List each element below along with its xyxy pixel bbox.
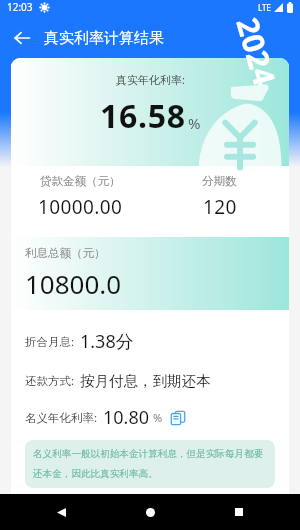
staticText: % — [188, 113, 201, 133]
staticText: 12:03 — [7, 0, 33, 14]
staticText: 分期数 — [202, 174, 237, 188]
staticText: 按月付息，到期还本 — [80, 372, 211, 390]
staticText: 120 — [203, 194, 237, 220]
button[interactable]: Back — [6, 22, 38, 54]
button[interactable]: Recents — [226, 499, 252, 525]
staticText: 贷款金额（元） — [40, 174, 121, 188]
staticText: 16.58 — [100, 94, 186, 138]
staticText: LTE — [258, 2, 271, 13]
staticText: 10000.00 — [38, 194, 123, 220]
staticText: 还款方式: — [25, 373, 75, 389]
button[interactable]: Back — [48, 499, 74, 525]
staticText: 真实年化利率: — [116, 72, 185, 87]
staticText: 10800.0 — [25, 266, 122, 301]
staticText: 10.80 — [103, 405, 150, 430]
staticText: 名义利率一般以初始本金计算利息，但是实际每月都要还本金，因此比真实利率高。 — [33, 448, 269, 480]
staticText: 名义年化利率: — [25, 410, 98, 426]
button[interactable]: Home — [137, 499, 163, 525]
staticText: 真实利率计算结果 — [44, 29, 164, 48]
staticText: 1.38分 — [80, 329, 134, 354]
staticText: % — [153, 410, 163, 425]
staticText: 2024 — [227, 13, 286, 90]
staticText: 利息总额（元） — [25, 246, 106, 260]
button[interactable]: Copy — [169, 409, 187, 427]
staticText: 折合月息: — [25, 334, 75, 350]
